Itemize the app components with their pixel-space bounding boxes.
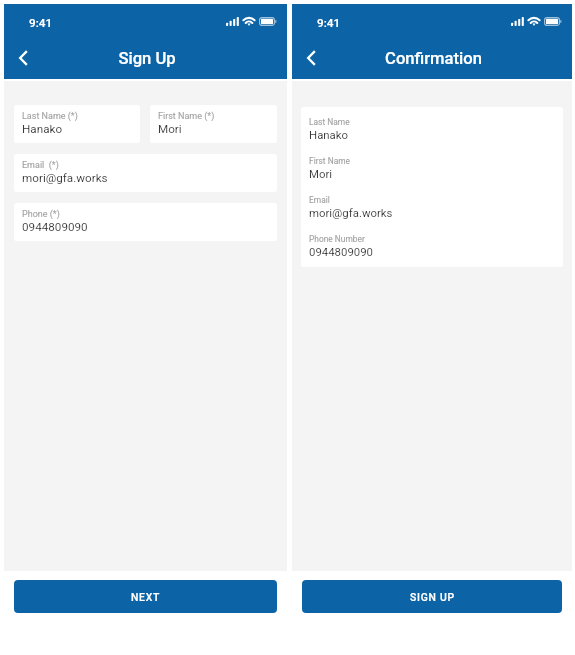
staticText: Phone Number bbox=[309, 234, 365, 244]
staticText: First Name (*) bbox=[158, 111, 215, 122]
staticText: 0944809090 bbox=[309, 245, 374, 258]
staticText: SIGN UP bbox=[410, 591, 455, 603]
staticText: mori@gfa.works bbox=[309, 206, 393, 219]
staticText: Hanako bbox=[22, 122, 63, 136]
staticText: Mori bbox=[158, 122, 182, 136]
staticText: 0944809090 bbox=[22, 220, 88, 234]
button[interactable]: SIGN UP bbox=[302, 580, 562, 613]
staticText: 9:41 bbox=[29, 16, 53, 30]
button[interactable]: Back bbox=[292, 43, 324, 75]
staticText: Sign Up bbox=[118, 49, 176, 68]
staticText: Hanako bbox=[309, 128, 349, 141]
staticText: Last Name (*) bbox=[22, 111, 78, 122]
staticText: Confirmation bbox=[385, 49, 482, 68]
button[interactable]: Last Name (*) bbox=[14, 105, 140, 143]
staticText: Last Name bbox=[309, 117, 350, 127]
button[interactable]: First Name (*) bbox=[150, 105, 277, 143]
button[interactable]: Back bbox=[4, 43, 36, 75]
staticText: Email bbox=[309, 195, 330, 205]
button[interactable]: Email (*) bbox=[14, 154, 277, 192]
staticText: First Name bbox=[309, 156, 351, 166]
button[interactable]: Phone (*) bbox=[14, 203, 277, 241]
staticText: NEXT bbox=[131, 591, 161, 603]
staticText: mori@gfa.works bbox=[22, 171, 108, 185]
button[interactable]: NEXT bbox=[14, 580, 277, 613]
staticText: Mori bbox=[309, 167, 333, 180]
staticText: 9:41 bbox=[317, 16, 341, 30]
staticText: Phone (*) bbox=[22, 209, 60, 220]
staticText: Email (*) bbox=[22, 160, 59, 171]
